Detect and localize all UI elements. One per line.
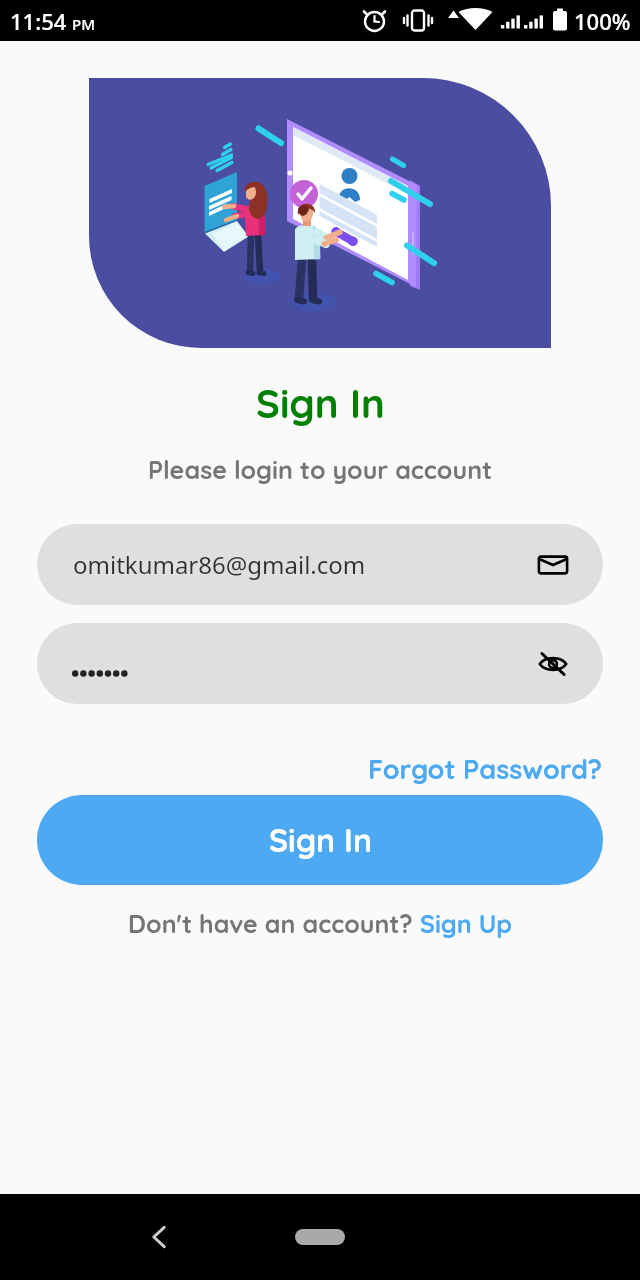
staticText: omitkumar86@gmail.com: [73, 548, 366, 581]
staticText: Sign Up: [420, 908, 513, 939]
staticText: Forgot Password?: [368, 752, 603, 786]
button[interactable]: Home: [295, 1229, 345, 1245]
button[interactable]: Back: [137, 1215, 181, 1259]
button[interactable]: Forgot Password?: [368, 752, 603, 786]
staticText: Please login to your account: [148, 454, 493, 485]
staticText: Sign In: [269, 820, 372, 860]
button[interactable]: Email: [531, 543, 575, 587]
button[interactable]: Show password: [37, 623, 603, 704]
staticText: Don't have an account?: [128, 908, 420, 939]
staticText: 100%: [574, 6, 631, 36]
button[interactable]: Sign Up: [420, 908, 513, 939]
staticText: Sign In: [256, 378, 385, 428]
staticText: PM: [72, 14, 95, 34]
staticText: 11:54: [10, 6, 67, 36]
button[interactable]: Show password: [531, 642, 575, 686]
button[interactable]: Sign In: [37, 795, 603, 885]
button[interactable]: omitkumar86@gmail.com: [37, 524, 603, 605]
